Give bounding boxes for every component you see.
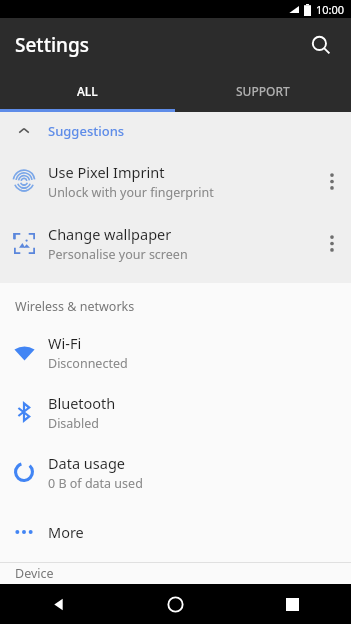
button[interactable]: Change wallpaper xyxy=(0,212,351,274)
button[interactable]: SUPPORT xyxy=(175,72,351,109)
button[interactable]: Bluetooth xyxy=(0,382,351,442)
button[interactable]: Use Pixel Imprint xyxy=(0,150,351,212)
button[interactable]: More options xyxy=(313,212,351,274)
staticText: Disabled xyxy=(48,415,100,432)
button[interactable]: Suggestions xyxy=(0,112,351,150)
button[interactable]: ALL xyxy=(0,72,175,109)
staticText: 10:00 xyxy=(316,2,345,17)
button[interactable]: Home xyxy=(117,584,234,624)
button[interactable]: Wi-Fi xyxy=(0,322,351,382)
staticText: Change wallpaper xyxy=(48,224,172,244)
staticText: Bluetooth xyxy=(48,393,116,413)
staticText: SUPPORT xyxy=(236,83,290,99)
staticText: Device xyxy=(15,565,54,582)
staticText: More xyxy=(48,522,84,542)
button[interactable]: More options xyxy=(313,150,351,212)
staticText: 0 B of data used xyxy=(48,475,143,492)
button[interactable]: Back xyxy=(0,584,117,624)
staticText: ALL xyxy=(77,83,98,99)
staticText: Disconnected xyxy=(48,355,128,372)
staticText: Wireless & networks xyxy=(15,298,135,315)
button[interactable]: More xyxy=(0,502,351,562)
staticText: Use Pixel Imprint xyxy=(48,162,165,182)
staticText: Suggestions xyxy=(48,122,125,140)
button[interactable]: Data usage xyxy=(0,442,351,502)
button[interactable]: Search xyxy=(301,25,341,65)
staticText: Wi-Fi xyxy=(48,333,82,353)
staticText: Settings xyxy=(15,32,89,58)
button[interactable]: Recent apps xyxy=(234,584,351,624)
staticText: Unlock with your fingerprint xyxy=(48,184,214,201)
staticText: Personalise your screen xyxy=(48,246,188,263)
staticText: Data usage xyxy=(48,453,125,473)
